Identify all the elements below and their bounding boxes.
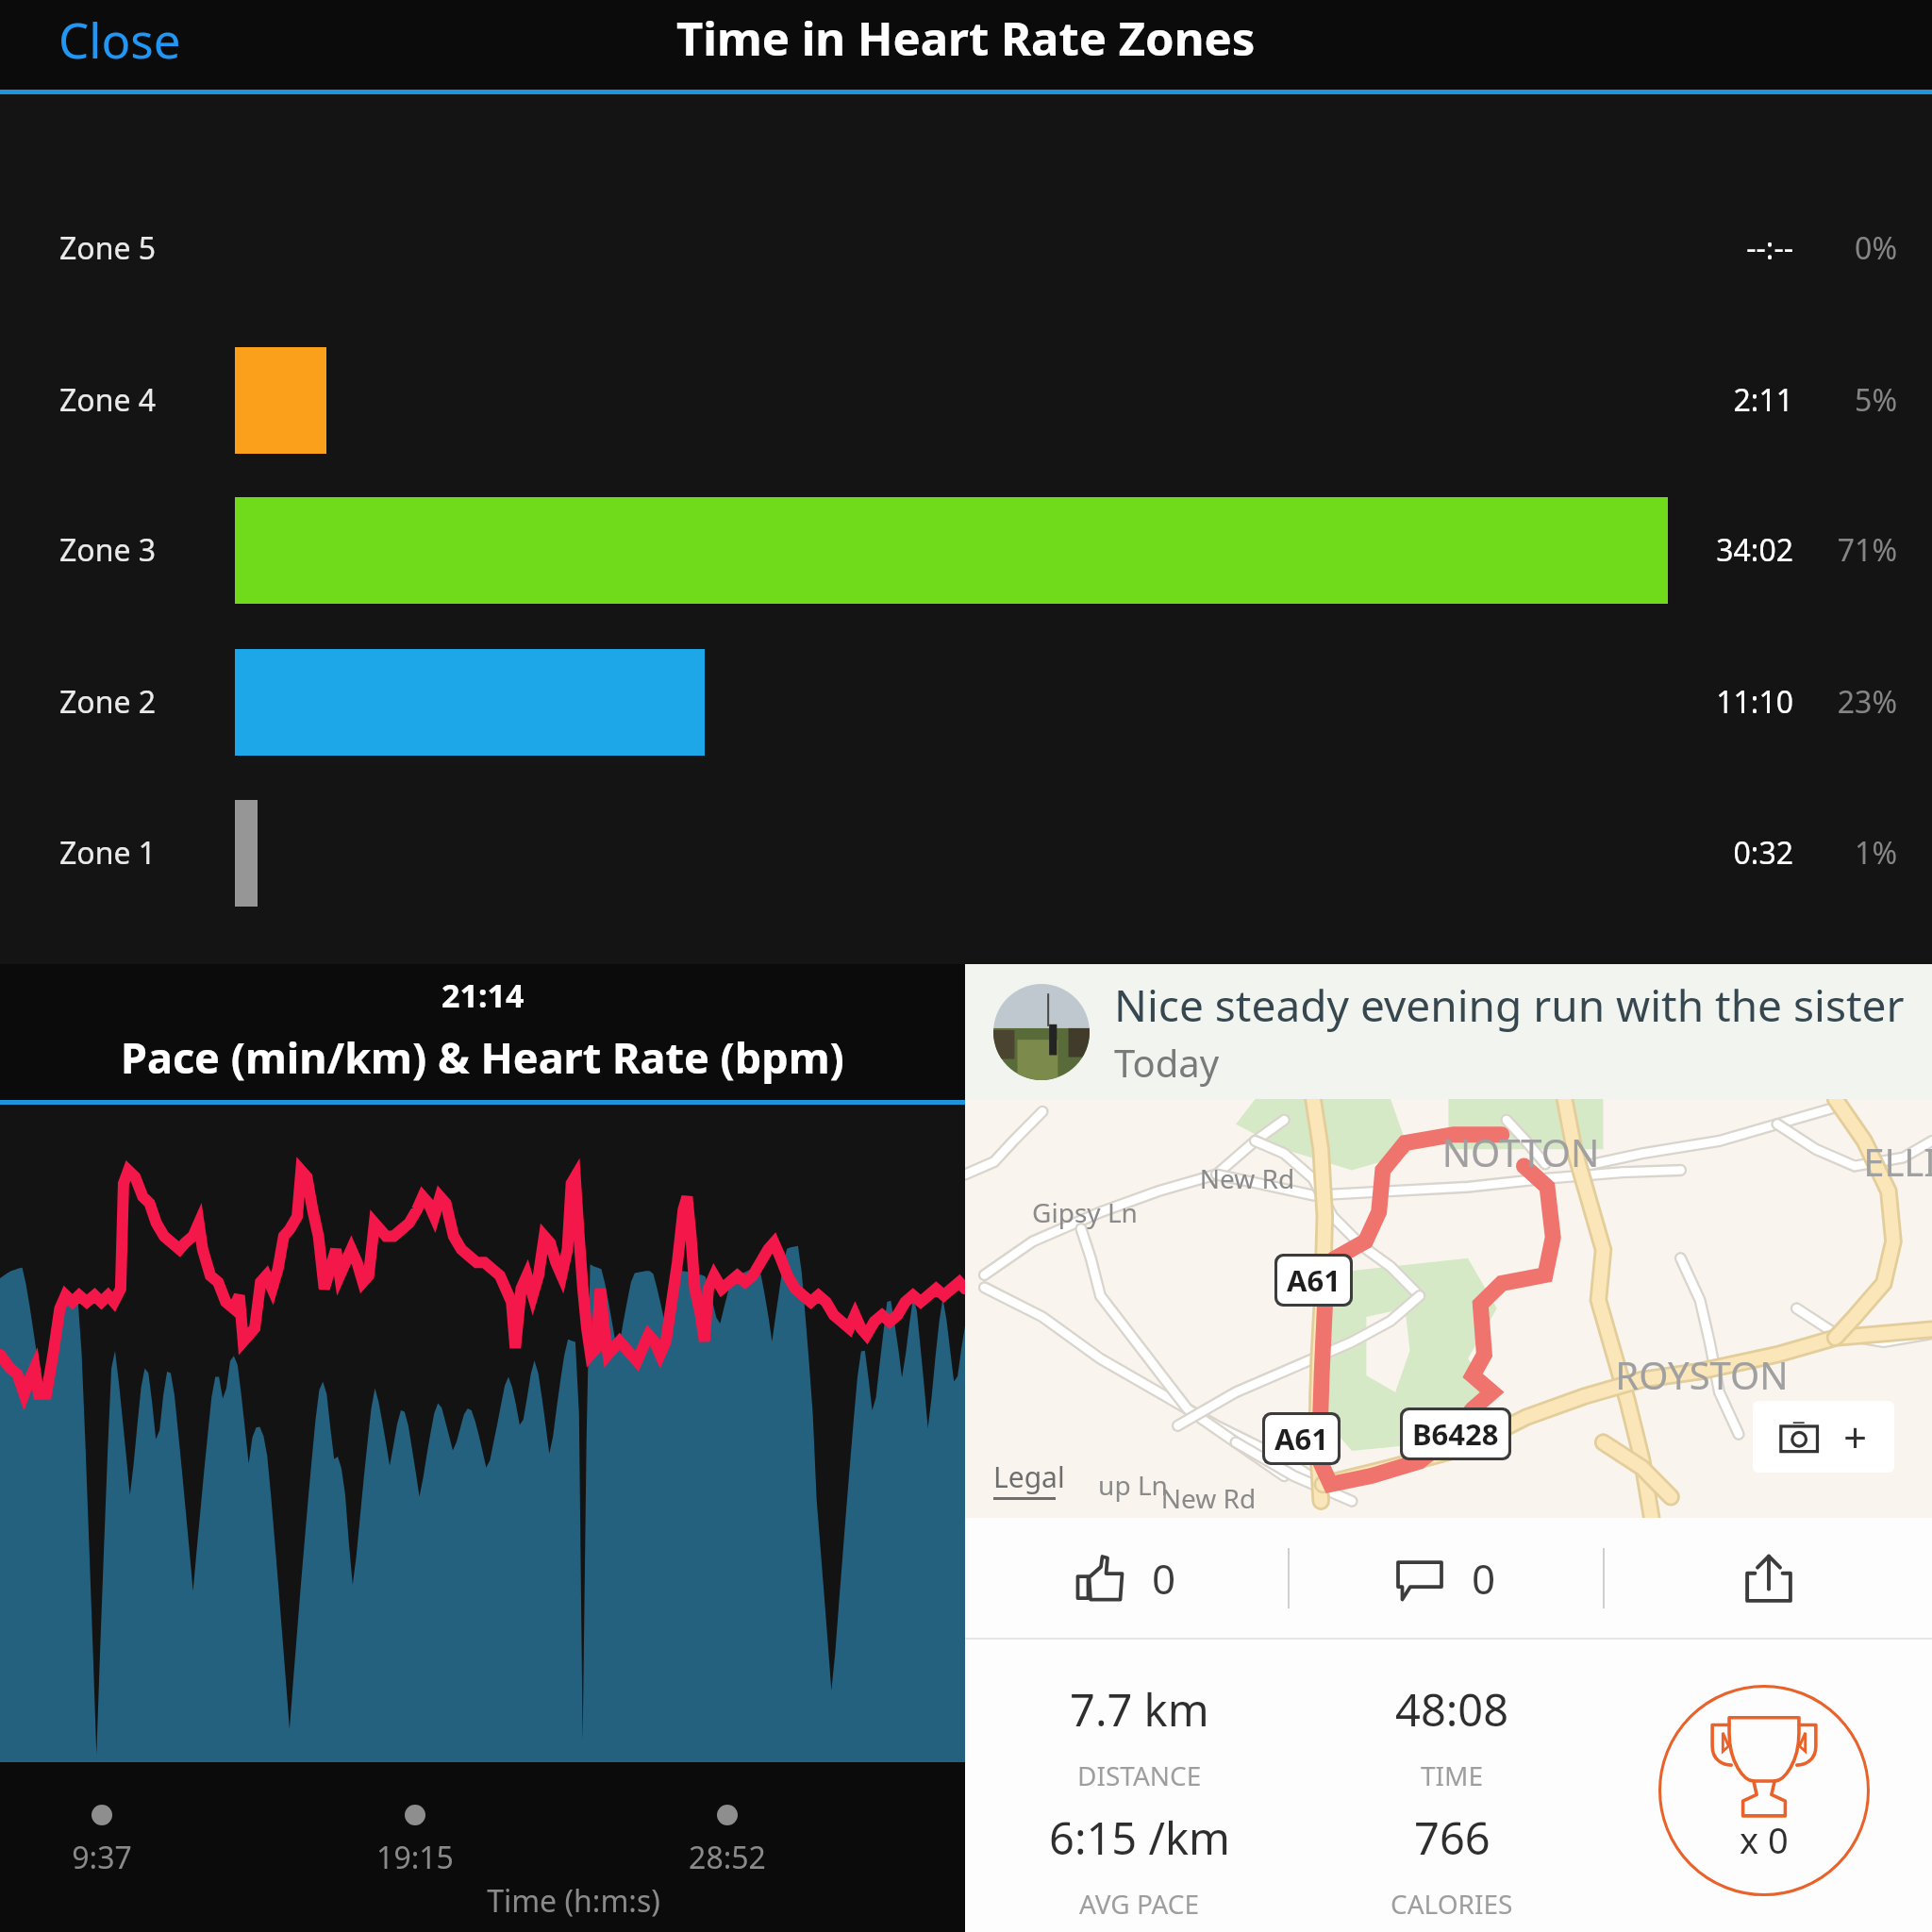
staticText: --:-- [1642,227,1793,269]
button[interactable]: Share [1605,1518,1932,1638]
staticText: 48:08 [1395,1679,1509,1740]
staticText: 1% [1792,832,1897,874]
button[interactable]: Add photo [1753,1401,1894,1473]
button[interactable]: Close [0,0,215,83]
staticText: 11:10 [1642,681,1793,723]
staticText: Zone 5 [59,227,157,269]
staticText: NOTTON [1407,1126,1634,1177]
staticText: 28:52 [652,1837,803,1878]
button[interactable]: Route map [965,1099,1932,1518]
button[interactable]: Achievements [1658,1685,1870,1896]
staticText: Legal [993,1457,1065,1496]
staticText: 7.7 km [1070,1679,1209,1740]
staticText: Gipsy Ln [972,1194,1198,1230]
staticText: A61 [1274,1419,1328,1458]
staticText: 5% [1792,379,1897,421]
staticText: TIME [1421,1757,1484,1793]
button[interactable]: Legal [993,1457,1065,1500]
staticText: CALORIES [1391,1886,1513,1922]
staticText: 34:02 [1642,529,1793,571]
staticText: New Rd [1134,1160,1360,1196]
button[interactable]: Nice steady evening run with the sister [965,964,1932,1099]
staticText: Zone 2 [59,681,157,723]
staticText: B6428 [1412,1414,1499,1454]
staticText: 71% [1792,529,1897,571]
staticText: 766 [1414,1807,1491,1868]
button[interactable]: Like [965,1518,1288,1638]
staticText: 9:37 [26,1837,177,1878]
staticText: 23% [1792,681,1897,723]
staticText: Pace (min/km) & Heart Rate (bpm) [121,1028,844,1086]
staticText: 21:14 [441,974,525,1017]
staticText: 19:15 [340,1837,491,1878]
staticText: 0 [1152,1550,1176,1607]
staticText: Zone 3 [59,529,157,571]
button[interactable]: Zone 4 2:11 5% [0,325,1932,476]
staticText: New Rd [1095,1480,1322,1516]
staticText: Close [58,7,181,70]
button[interactable]: Zone 1 0:32 1% [0,777,1932,929]
staticText: 0:32 [1642,832,1793,874]
button[interactable]: Zone 3 34:02 71% [0,475,1932,626]
staticText: AVG PACE [1079,1886,1200,1922]
staticText: Zone 4 [59,379,157,421]
staticText: 2:11 [1642,379,1793,421]
staticText: 6:15 /km [1049,1807,1230,1868]
staticText: ELLIS [1797,1136,1932,1187]
staticText: Time in Heart Rate Zones [676,7,1256,70]
staticText: 0% [1792,227,1897,269]
staticText: up Ln [1020,1467,1246,1503]
staticText: Time (h:m:s) [484,1880,663,1922]
staticText: Nice steady evening run with the sister [1114,975,1905,1035]
staticText: Zone 1 [59,832,157,874]
staticText: 0 [1472,1550,1496,1607]
staticText: DISTANCE [1077,1757,1202,1793]
staticText: A61 [1287,1260,1341,1300]
staticText: + [1843,1408,1868,1465]
button[interactable]: Zone 5 --:-- 0% [0,173,1932,325]
button[interactable]: Zone 2 11:10 23% [0,626,1932,778]
staticText: Today [1114,1037,1220,1088]
staticText: x 0 [1740,1815,1789,1864]
button[interactable]: Comment [1290,1518,1603,1638]
staticText: ROYSTON [1589,1349,1815,1400]
